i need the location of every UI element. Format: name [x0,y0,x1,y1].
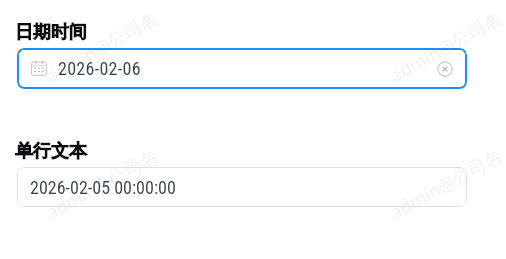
button[interactable]: Clear [434,58,456,80]
staticText: 2026-02-06 [58,58,141,79]
button[interactable]: 2026-02-05 00:00:00 [17,167,467,207]
staticText: 日期时间 [15,21,87,44]
button[interactable]: 2026-02-06 [17,48,467,89]
staticText: 2026-02-05 00:00:00 [30,177,176,198]
staticText: 单行文本 [15,140,87,163]
